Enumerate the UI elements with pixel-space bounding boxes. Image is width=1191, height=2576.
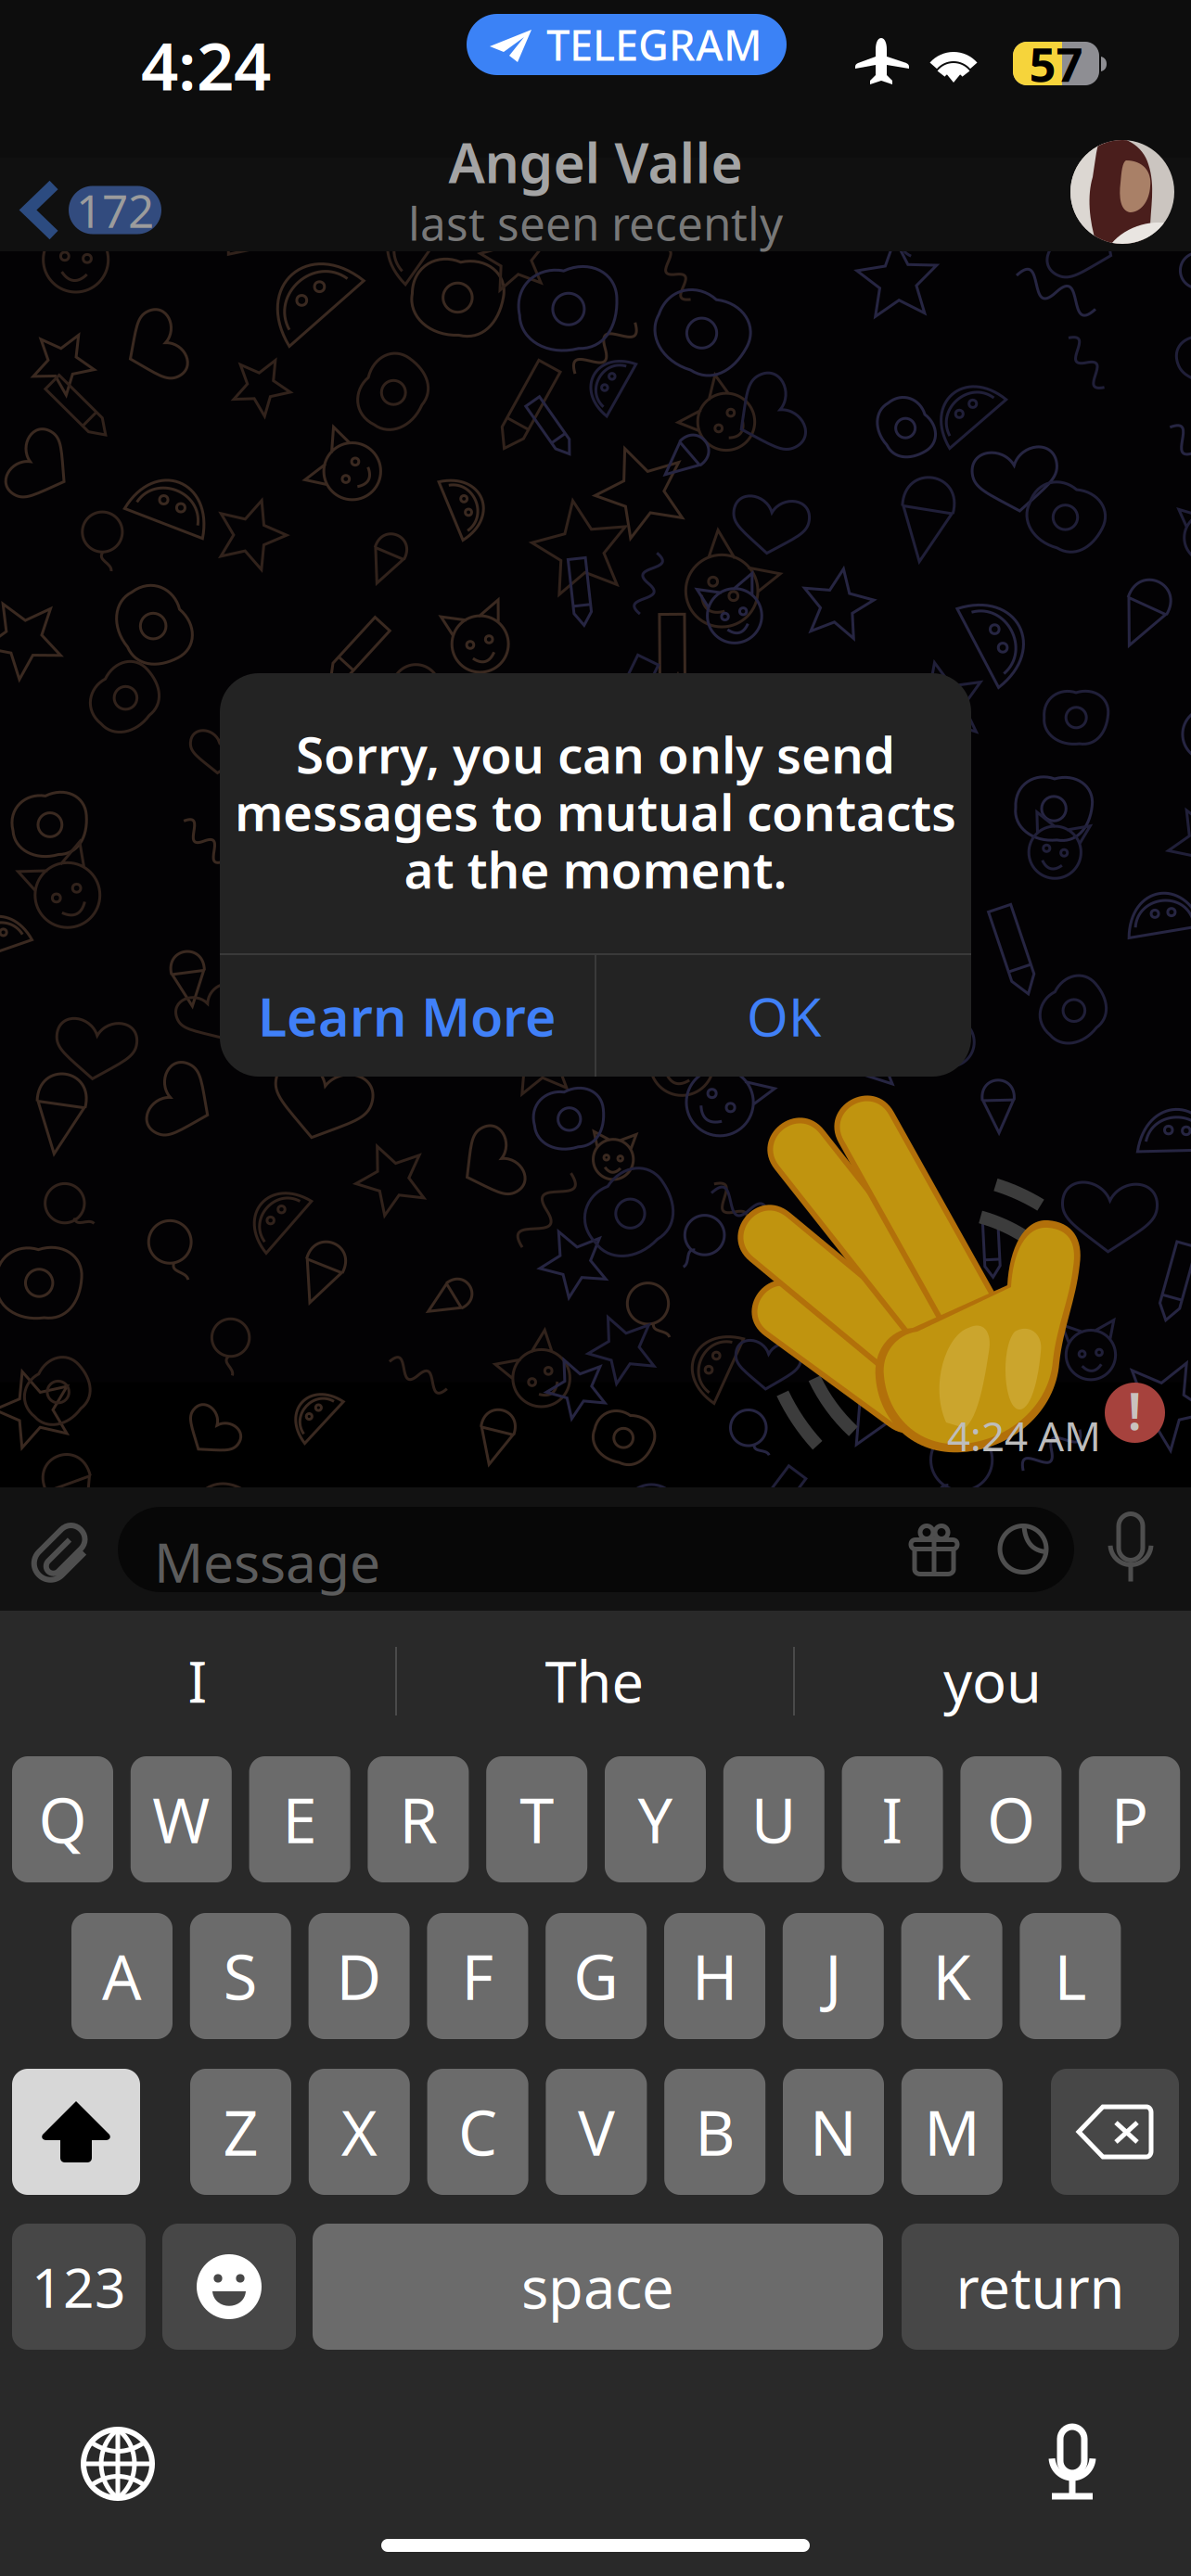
button[interactable]: Attach bbox=[14, 1487, 107, 1611]
button[interactable]: B bbox=[664, 2069, 765, 2195]
staticText: E bbox=[283, 1778, 317, 1860]
button[interactable]: space bbox=[313, 2224, 883, 2350]
button[interactable]: Z bbox=[190, 2069, 291, 2195]
button[interactable]: G bbox=[546, 1913, 647, 2039]
button[interactable]: F bbox=[427, 1913, 528, 2039]
staticText: 4:24 bbox=[141, 21, 271, 108]
button[interactable]: Record voice message bbox=[1089, 1487, 1172, 1611]
button[interactable]: P bbox=[1079, 1756, 1180, 1882]
button[interactable]: T bbox=[486, 1756, 587, 1882]
button[interactable]: Next keyboard bbox=[62, 2408, 173, 2519]
staticText: at the moment. bbox=[404, 835, 787, 903]
staticText: 123 bbox=[32, 2251, 126, 2323]
button[interactable]: return bbox=[902, 2224, 1179, 2350]
button[interactable]: U bbox=[723, 1756, 824, 1882]
staticText: 4:24 AM bbox=[947, 1408, 1101, 1463]
button[interactable]: O bbox=[960, 1756, 1062, 1882]
staticText: The bbox=[545, 1643, 644, 1718]
staticText: F bbox=[461, 1935, 494, 2017]
button[interactable]: X bbox=[309, 2069, 410, 2195]
button[interactable]: R bbox=[368, 1756, 469, 1882]
button[interactable]: Shift bbox=[12, 2069, 140, 2195]
staticText: V bbox=[578, 2091, 615, 2173]
staticText: Angel Valle bbox=[448, 126, 743, 198]
button[interactable]: A bbox=[71, 1913, 173, 2039]
staticText: M bbox=[924, 2091, 980, 2173]
staticText: A bbox=[102, 1935, 142, 2017]
button[interactable]: H bbox=[664, 1913, 765, 2039]
staticText: B bbox=[695, 2091, 735, 2173]
staticText: D bbox=[336, 1935, 382, 2017]
staticText: L bbox=[1054, 1935, 1087, 2017]
staticText: J bbox=[825, 1935, 842, 2017]
button[interactable]: 123 bbox=[12, 2224, 146, 2350]
staticText: S bbox=[223, 1935, 258, 2017]
button[interactable]: K bbox=[901, 1913, 1002, 2039]
button[interactable]: Profile photo bbox=[1070, 140, 1174, 244]
button[interactable]: 172 bbox=[0, 163, 180, 257]
staticText: O bbox=[987, 1778, 1035, 1860]
staticText: T bbox=[520, 1778, 554, 1860]
staticText: Sorry, you can only send bbox=[296, 720, 895, 788]
staticText: X bbox=[341, 2091, 377, 2173]
button[interactable]: OK bbox=[596, 955, 971, 1077]
button[interactable]: V bbox=[546, 2069, 647, 2195]
button[interactable]: Dictation bbox=[1021, 2406, 1123, 2518]
button[interactable]: Emoji bbox=[162, 2224, 296, 2350]
staticText: C bbox=[458, 2091, 497, 2173]
staticText: Message bbox=[154, 1525, 380, 1598]
staticText: ! bbox=[1127, 1375, 1142, 1444]
button[interactable]: Q bbox=[12, 1756, 113, 1882]
button[interactable]: I bbox=[0, 1611, 395, 1751]
staticText: OK bbox=[747, 981, 821, 1051]
button[interactable]: Stickers bbox=[986, 1487, 1060, 1611]
button[interactable]: W bbox=[131, 1756, 232, 1882]
staticText: W bbox=[152, 1778, 210, 1860]
button[interactable]: Learn More bbox=[220, 955, 595, 1077]
staticText: TELEGRAM bbox=[546, 17, 762, 72]
staticText: space bbox=[521, 2249, 674, 2324]
button[interactable]: you bbox=[794, 1611, 1191, 1751]
staticText: Q bbox=[38, 1778, 87, 1860]
staticText: Y bbox=[638, 1778, 673, 1860]
staticText: N bbox=[810, 2091, 857, 2173]
button[interactable]: D bbox=[309, 1913, 410, 2039]
staticText: R bbox=[399, 1778, 437, 1860]
staticText: 57 bbox=[1029, 32, 1083, 95]
staticText: P bbox=[1111, 1778, 1148, 1860]
button[interactable]: M bbox=[901, 2069, 1003, 2195]
staticText: you bbox=[943, 1643, 1042, 1718]
button[interactable]: Send a gift bbox=[897, 1487, 971, 1611]
button[interactable]: S bbox=[190, 1913, 291, 2039]
button[interactable]: The bbox=[396, 1611, 793, 1751]
staticText: K bbox=[933, 1935, 971, 2017]
staticText: return bbox=[956, 2249, 1125, 2324]
staticText: Learn More bbox=[258, 981, 557, 1051]
button[interactable]: E bbox=[249, 1756, 350, 1882]
button[interactable]: C bbox=[427, 2069, 528, 2195]
staticText: last seen recently bbox=[408, 193, 783, 253]
button[interactable]: Y bbox=[605, 1756, 706, 1882]
button[interactable]: L bbox=[1020, 1913, 1121, 2039]
staticText: 172 bbox=[76, 180, 154, 240]
staticText: Z bbox=[223, 2091, 258, 2173]
button[interactable]: Delete bbox=[1051, 2069, 1179, 2195]
staticText: U bbox=[751, 1778, 797, 1860]
button[interactable]: I bbox=[842, 1756, 943, 1882]
staticText: messages to mutual contacts bbox=[235, 778, 956, 845]
staticText: I bbox=[188, 1643, 207, 1718]
button[interactable]: N bbox=[783, 2069, 884, 2195]
staticText: I bbox=[882, 1778, 903, 1860]
button[interactable]: J bbox=[783, 1913, 884, 2039]
staticText: H bbox=[692, 1935, 737, 2017]
staticText: G bbox=[573, 1935, 619, 2017]
